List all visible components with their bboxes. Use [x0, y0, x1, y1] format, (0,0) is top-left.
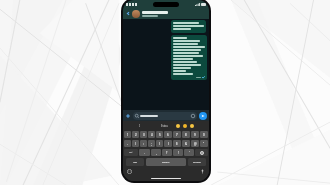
- button[interactable]: Emoji: [183, 124, 187, 128]
- button[interactable]: Voice input: [200, 169, 205, 174]
- staticText: ?: [166, 151, 168, 155]
- button[interactable]: 4: [148, 131, 155, 138]
- staticText: ,: [156, 151, 157, 155]
- staticText: .: [144, 151, 145, 155]
- button[interactable]: ;: [148, 140, 155, 147]
- staticText: &: [185, 142, 188, 146]
- staticText: 1: [127, 133, 129, 137]
- staticText: 9: [194, 133, 196, 137]
- button[interactable]: Emoji: [176, 124, 180, 128]
- button[interactable]: 0: [200, 131, 208, 138]
- staticText: 6: [167, 133, 169, 137]
- button[interactable]: 2: [132, 131, 139, 138]
- staticText: 7: [176, 133, 178, 137]
- staticText: $: [176, 142, 178, 146]
- button[interactable]: &: [182, 140, 190, 147]
- button[interactable]: 1: [124, 131, 131, 138]
- button[interactable]: ': [184, 149, 194, 156]
- staticText: 8: [185, 133, 187, 137]
- button[interactable]: 5: [156, 131, 163, 138]
- button[interactable]: -: [124, 140, 131, 147]
- staticText: 0: [203, 133, 205, 137]
- button[interactable]: Attach: [125, 113, 131, 119]
- button[interactable]: !: [173, 149, 183, 156]
- staticText: @: [194, 142, 197, 146]
- button[interactable]: [171, 35, 207, 80]
- staticText: I: [139, 124, 140, 128]
- button[interactable]: Emoji: [190, 124, 194, 128]
- button[interactable]: retorno: [188, 158, 206, 166]
- staticText: 2: [135, 133, 137, 137]
- button[interactable]: Emoji keyboard: [127, 169, 132, 174]
- button[interactable]: @: [191, 140, 199, 147]
- button[interactable]: =\<: [124, 149, 138, 156]
- button[interactable]: 9: [191, 131, 199, 138]
- staticText: 5: [159, 133, 161, 137]
- staticText: !: [178, 151, 179, 155]
- button[interactable]: /: [132, 140, 139, 147]
- button[interactable]: Back: [126, 11, 131, 16]
- button[interactable]: ,: [151, 149, 161, 156]
- button[interactable]: [171, 20, 206, 33]
- button[interactable]: .: [139, 149, 150, 156]
- staticText: -: [127, 142, 128, 146]
- button[interactable]: $: [173, 140, 181, 147]
- button[interactable]: ): [164, 140, 172, 147]
- button[interactable]: (: [156, 140, 163, 147]
- button[interactable]: Backspace: [195, 149, 208, 156]
- staticText: ": [203, 142, 205, 146]
- staticText: 3: [143, 133, 145, 137]
- button[interactable]: ?: [162, 149, 172, 156]
- staticText: Estou: [161, 124, 168, 128]
- button[interactable]: 3: [140, 131, 147, 138]
- staticText: ': [189, 151, 190, 155]
- staticText: ABC: [133, 161, 138, 164]
- button[interactable]: ABC: [126, 158, 144, 166]
- staticText: 4: [151, 133, 153, 137]
- button[interactable]: ": [200, 140, 208, 147]
- staticText: ): [168, 142, 169, 146]
- staticText: retorno: [193, 161, 201, 164]
- button[interactable]: 8: [182, 131, 190, 138]
- button[interactable]: :: [140, 140, 147, 147]
- other: Sticker: [191, 114, 195, 118]
- staticText: ;: [151, 142, 152, 146]
- button[interactable]: 7: [173, 131, 181, 138]
- staticText: (: [159, 142, 160, 146]
- button[interactable]: Sticker: [133, 112, 197, 120]
- button[interactable]: Send: [199, 112, 207, 120]
- staticText: /: [135, 142, 137, 146]
- staticText: espaço: [162, 161, 170, 164]
- staticText: :: [143, 142, 144, 146]
- button[interactable]: espaço: [146, 158, 186, 166]
- button[interactable]: 6: [164, 131, 172, 138]
- staticText: =\<: [129, 151, 133, 154]
- button[interactable]: Back: [123, 8, 209, 19]
